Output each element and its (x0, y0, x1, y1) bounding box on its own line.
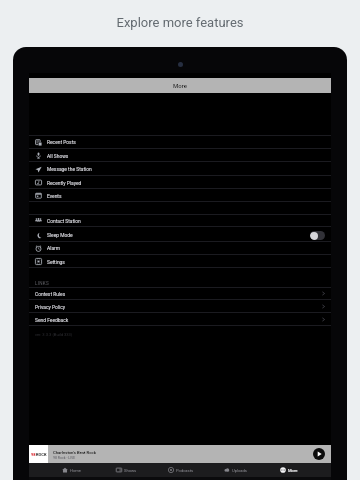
staticText: Settings (47, 259, 65, 265)
button[interactable]: 98 (29, 445, 331, 463)
button[interactable]: Home (44, 463, 99, 477)
staticText: Shows (124, 468, 137, 473)
button[interactable]: Sleep Mode (29, 228, 331, 242)
staticText: Uploads (232, 468, 247, 473)
staticText: Charleston's Best Rock (53, 450, 96, 455)
button[interactable]: Contact Station (29, 214, 331, 227)
staticText: More (173, 82, 187, 89)
staticText: Contest Rules (35, 291, 66, 297)
staticText: Recently Played (47, 180, 82, 186)
staticText: Events (47, 193, 62, 199)
staticText: Contact Station (47, 218, 81, 224)
button[interactable]: Recent Posts (29, 135, 331, 149)
button[interactable]: Shows (99, 463, 154, 477)
button[interactable]: Play (313, 448, 325, 460)
button[interactable]: Uploads (208, 463, 262, 477)
staticText: ROCK (36, 452, 47, 457)
staticText: 98 (31, 452, 36, 457)
button[interactable]: Send Feedback (29, 313, 331, 326)
staticText: Explore more features (0, 15, 360, 30)
staticText: Send Feedback (35, 317, 69, 323)
staticText: LINKS (35, 281, 49, 286)
staticText: Message the Station (47, 166, 92, 172)
button[interactable]: Podcasts (154, 463, 208, 477)
button[interactable]: Contest Rules (29, 287, 331, 300)
button[interactable]: Alarm (29, 241, 331, 255)
button[interactable]: Privacy Policy (29, 300, 331, 313)
staticText: ver. 3.3.3 (Build 333) (35, 332, 73, 337)
staticText: Alarm (47, 245, 60, 251)
staticText: All Shows (47, 153, 69, 159)
staticText: Home (70, 468, 82, 473)
button[interactable]: Sleep Mode toggle (310, 231, 325, 240)
staticText: Sleep Mode (47, 232, 73, 238)
button[interactable]: More (262, 463, 316, 477)
button[interactable]: All Shows (29, 149, 331, 162)
staticText: Recent Posts (47, 139, 76, 145)
staticText: Privacy Policy (35, 304, 66, 310)
button[interactable]: Settings (29, 255, 331, 268)
staticText: Podcasts (176, 468, 194, 473)
staticText: More (288, 468, 298, 473)
button[interactable]: Events (29, 189, 331, 202)
button[interactable]: Message the Station (29, 162, 331, 176)
staticText: 98 Rock - LIVE (53, 456, 76, 460)
button[interactable]: Recently Played (29, 176, 331, 189)
